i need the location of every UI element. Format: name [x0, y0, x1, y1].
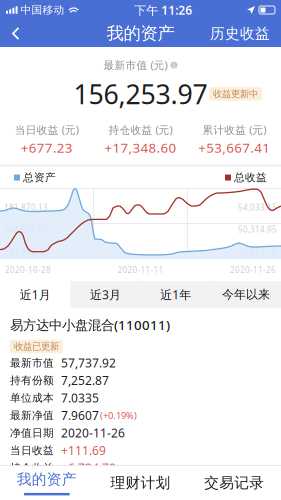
staticText: 2020-11-26 — [230, 265, 276, 275]
button[interactable]: 历史收益 — [199, 20, 281, 47]
staticText: 总资产 — [23, 171, 56, 184]
staticText: (+0.19%) — [100, 409, 137, 422]
staticText: 46,615.76 — [238, 246, 277, 257]
staticText: 近3月 — [90, 286, 121, 302]
staticText: 累计收益 (元) — [202, 123, 266, 137]
staticText: 7.9607 — [61, 407, 99, 423]
staticText: +6,734.70 — [61, 460, 116, 476]
staticText: 7.0335 — [61, 390, 99, 406]
staticText: 近1年 — [160, 286, 191, 302]
staticText: 2020-10-28 — [5, 265, 51, 275]
staticText: 下午 11:26 — [134, 2, 192, 18]
staticText: +17,348.60 — [104, 139, 176, 156]
button[interactable]: 近1年 — [140, 281, 211, 308]
button[interactable]: Back — [0, 20, 32, 47]
staticText: 147,340.32 — [4, 246, 48, 257]
staticText: 单位成本 — [10, 391, 54, 404]
staticText: 最新市值 — [10, 356, 54, 369]
staticText: +111.69 — [61, 442, 106, 458]
staticText: 持仓收益 (元) — [108, 123, 172, 137]
staticText: 近1月 — [20, 286, 51, 302]
staticText: +677.23 — [21, 139, 73, 156]
staticText: 持仓收益 — [10, 461, 54, 474]
staticText: 50,314.95 — [238, 224, 277, 235]
staticText: +53,667.41 — [198, 139, 270, 156]
staticText: 2020-11-11 — [117, 265, 163, 275]
staticText: 最新市值 (元) — [103, 58, 167, 72]
staticText: 理财计划 — [110, 474, 170, 492]
staticText: 当日收益 — [10, 444, 54, 457]
button[interactable]: 理财计划 — [94, 466, 187, 500]
staticText: 181,870.13 — [4, 202, 48, 213]
staticText: 57,737.92 — [61, 355, 116, 371]
staticText: 中国移动 — [21, 3, 65, 16]
staticText: 今年以来 — [222, 287, 270, 302]
staticText: 7,252.87 — [61, 372, 109, 388]
staticText: 2020-11-26 — [61, 425, 125, 441]
staticText: 总收益 — [234, 171, 267, 184]
staticText: 历史收益 — [210, 24, 270, 42]
staticText: 易方达中小盘混合(110011) — [10, 316, 170, 334]
staticText: 当日收益 (元) — [15, 123, 79, 137]
button[interactable]: 交易记录 — [187, 466, 281, 500]
staticText: 54,033.15 — [238, 202, 277, 213]
staticText: 164,605.63 — [4, 224, 48, 235]
staticText: 交易记录 — [204, 474, 264, 492]
button[interactable]: 近1月 — [0, 281, 70, 308]
button[interactable]: 今年以来 — [211, 281, 281, 308]
staticText: 收益更新中 — [213, 88, 258, 100]
staticText: 我的资产 — [17, 470, 77, 488]
button[interactable]: 近3月 — [70, 281, 140, 308]
staticText: 净值日期 — [10, 426, 54, 439]
staticText: 我的资产 — [106, 23, 174, 44]
staticText: i — [173, 61, 175, 70]
staticText: 持有份额 — [10, 374, 54, 387]
staticText: 最新净值 — [10, 409, 54, 422]
button[interactable]: 我的资产 — [0, 466, 94, 500]
staticText: 156,253.97 — [73, 76, 207, 112]
staticText: 收益已更新 — [14, 341, 59, 352]
